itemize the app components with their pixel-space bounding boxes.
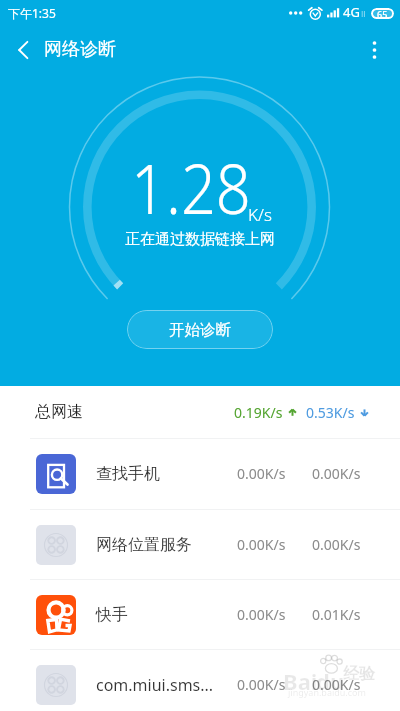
staticText: 下午1:35 xyxy=(8,5,56,21)
button[interactable]: More options xyxy=(346,26,400,74)
staticText: 网络诊断 xyxy=(44,38,116,61)
staticText: 查找手机 xyxy=(96,464,160,484)
button[interactable]: Back xyxy=(0,26,46,74)
staticText: 0.00K/s xyxy=(237,605,286,624)
staticText: 经验 xyxy=(343,664,375,684)
staticText: Bai xyxy=(283,666,318,696)
staticText: 0.00K/s xyxy=(237,675,286,694)
staticText: 开始诊断 xyxy=(169,320,231,340)
staticText: com.miui.sms... xyxy=(96,674,214,696)
staticText: 0.53K/s xyxy=(306,403,355,422)
button[interactable]: com.miui.sms... xyxy=(0,650,400,711)
staticText: du xyxy=(316,666,345,696)
staticText: K/s xyxy=(248,203,272,226)
staticText: 0.00K/s xyxy=(237,535,286,554)
button[interactable]: 网络位置服务 xyxy=(0,510,400,579)
staticText: 65 xyxy=(377,8,388,19)
button[interactable]: 总网速 xyxy=(0,386,400,438)
staticText: 正在通过数据链接上网 xyxy=(125,230,275,249)
staticText: 0.00K/s xyxy=(312,675,361,694)
staticText: 网络位置服务 xyxy=(96,535,192,555)
button[interactable]: 开始诊断 xyxy=(127,310,273,349)
staticText: 0.01K/s xyxy=(312,605,361,624)
staticText: 0.00K/s xyxy=(237,464,286,483)
staticText: 0.00K/s xyxy=(312,535,361,554)
staticText: 0.00K/s xyxy=(312,464,361,483)
button[interactable]: 快手 xyxy=(0,580,400,649)
staticText: jingyan.baidu.com xyxy=(288,686,366,698)
staticText: 总网速 xyxy=(35,402,83,422)
staticText: 4G xyxy=(343,3,360,21)
staticText: 1.28 xyxy=(131,141,252,234)
staticText: 快手 xyxy=(96,605,128,625)
staticText: 0.19K/s xyxy=(234,403,283,422)
button[interactable]: 查找手机 xyxy=(0,439,400,508)
